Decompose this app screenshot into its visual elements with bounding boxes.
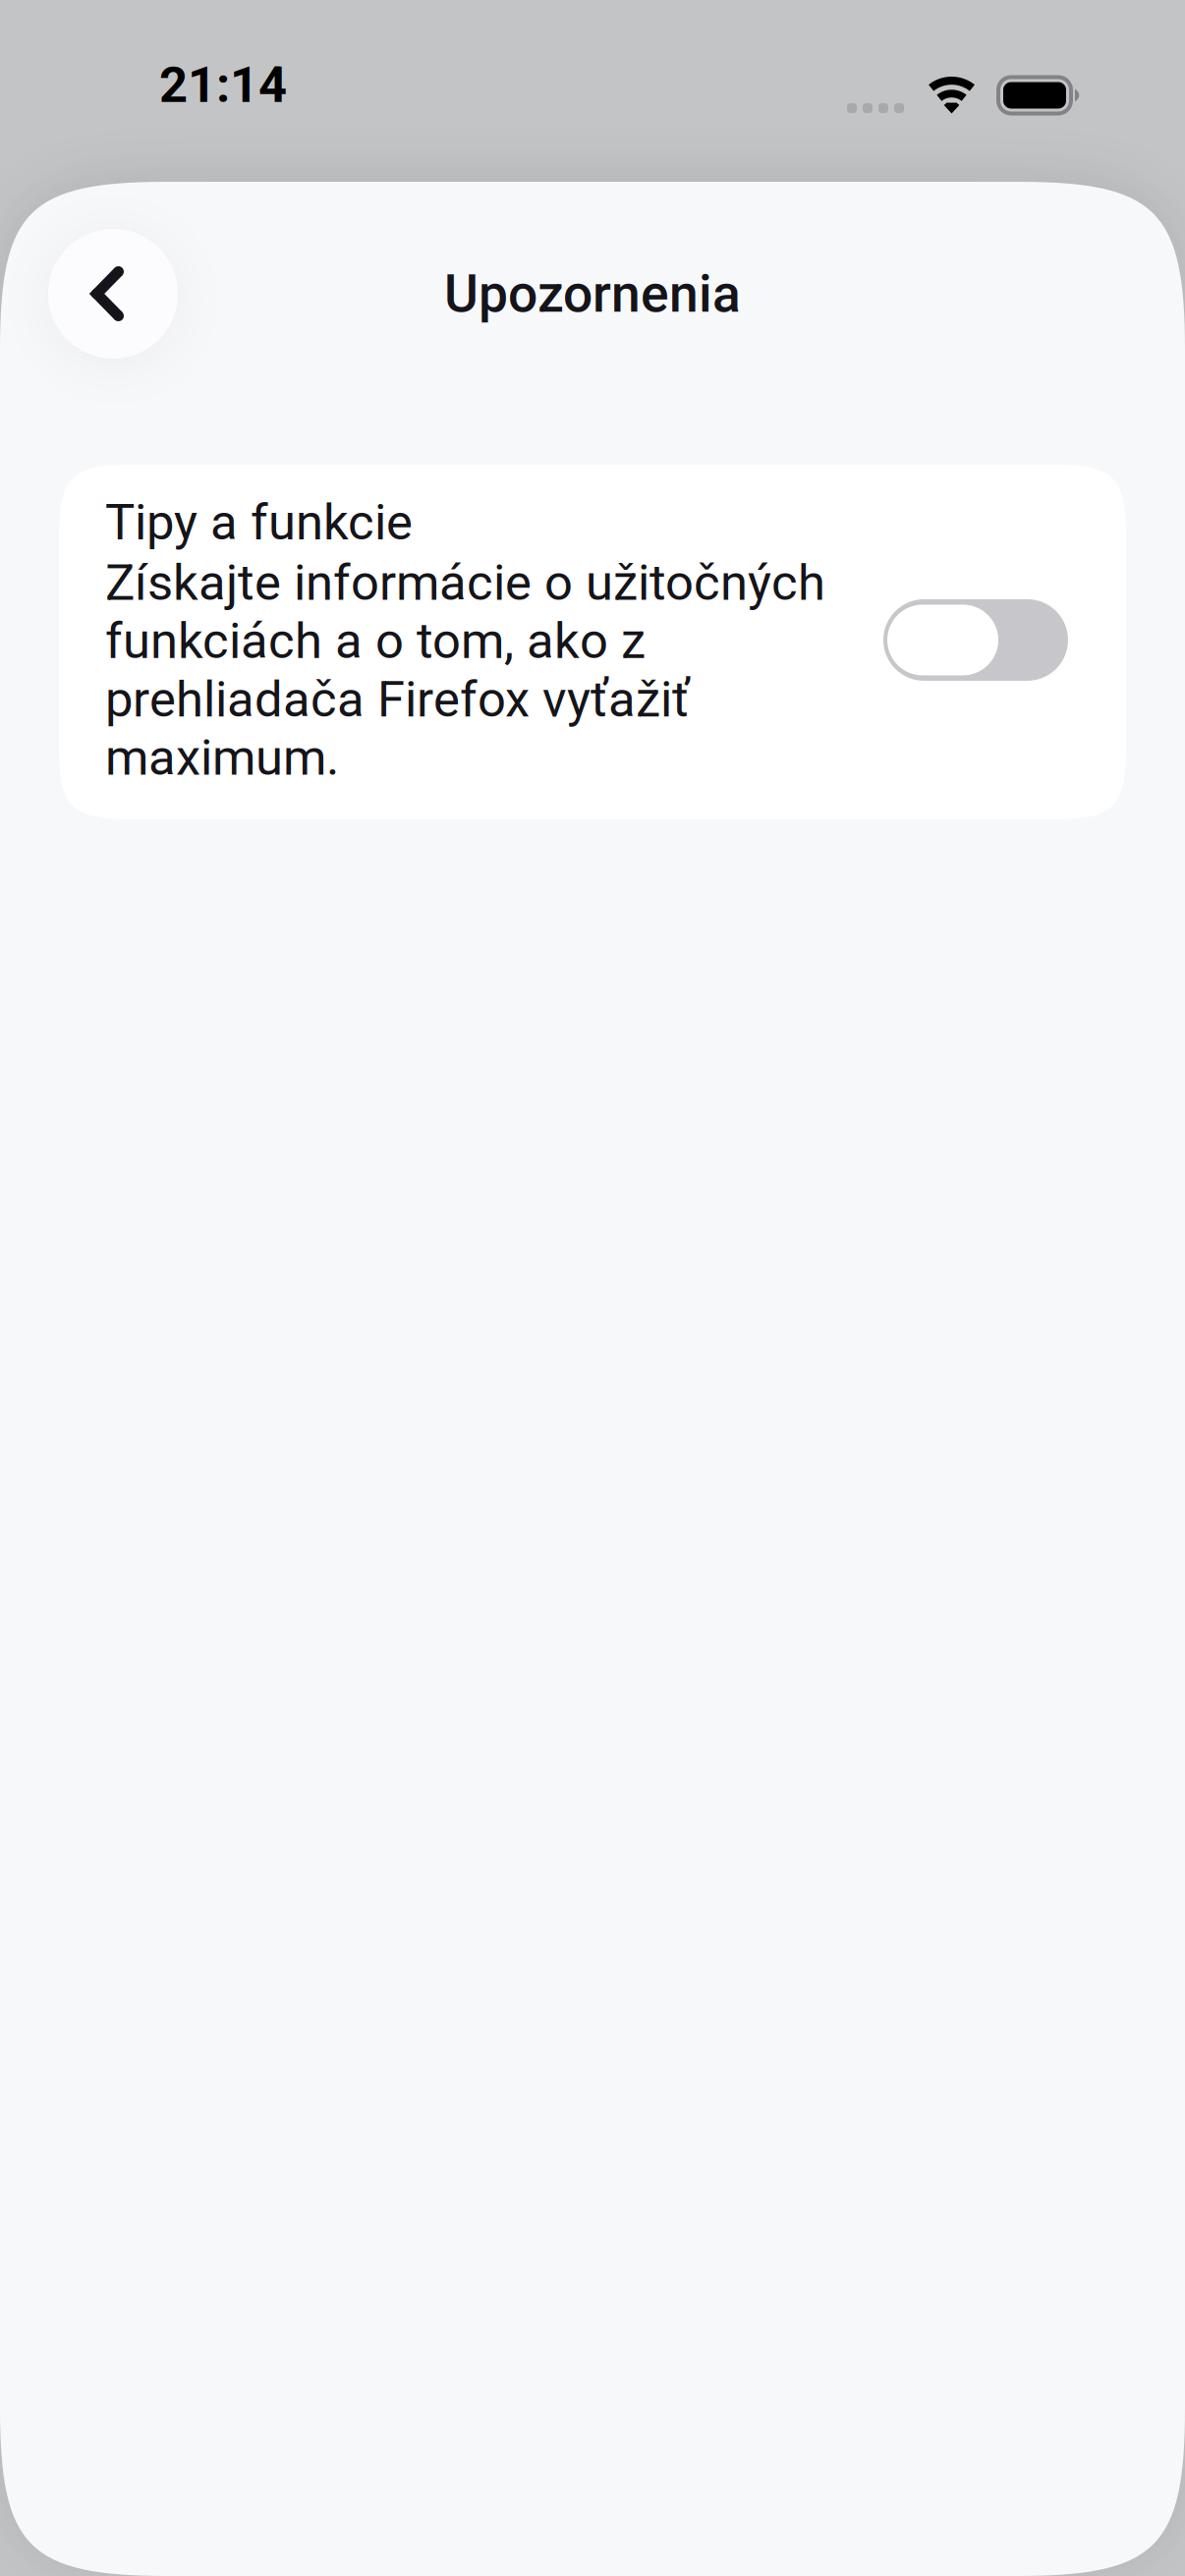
- staticText: Upozornenia: [444, 263, 741, 325]
- staticText: Tipy a funkcie: [105, 493, 413, 552]
- button[interactable]: Tipy a funkcie: [883, 599, 1068, 681]
- staticText: Získajte informácie o užitočných funkciá…: [105, 554, 825, 787]
- staticText: 21:14: [159, 56, 287, 114]
- button[interactable]: Back: [48, 229, 178, 359]
